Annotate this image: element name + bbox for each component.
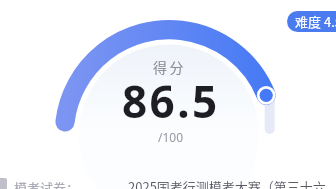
staticText: 模考试卷： — [14, 178, 80, 189]
staticText: 得分 — [153, 57, 187, 77]
button[interactable]: 难度 4.5 — [287, 11, 336, 32]
staticText: /100 — [158, 129, 184, 145]
staticText: 2025国考行测模考大赛（第三十六 — [128, 177, 326, 189]
staticText: 难度 4.5 — [295, 12, 336, 31]
staticText: 86.5 — [122, 71, 220, 131]
